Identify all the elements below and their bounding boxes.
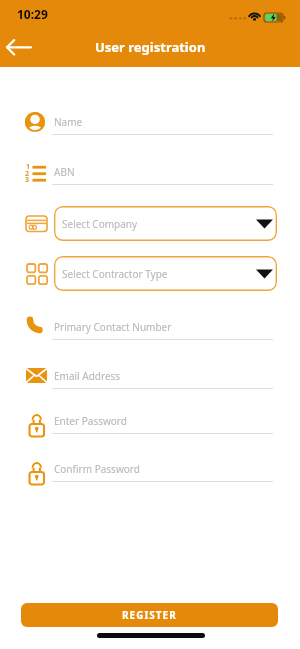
staticText: 10:29 xyxy=(17,6,48,22)
button[interactable]: Enter Password xyxy=(52,408,273,434)
staticText: 2 xyxy=(25,169,30,179)
button[interactable]: Confirm Password xyxy=(52,456,273,482)
staticText: ABN xyxy=(54,165,75,179)
staticText: Name xyxy=(54,115,83,129)
button[interactable]: Select Company xyxy=(54,206,277,241)
button[interactable] xyxy=(0,33,42,61)
staticText: User registration xyxy=(95,38,206,56)
staticText: Email Address xyxy=(54,369,121,383)
staticText: Primary Contact Number xyxy=(54,320,172,334)
button[interactable]: Email Address xyxy=(52,363,273,389)
staticText: 3 xyxy=(25,175,30,185)
staticText: Enter Password xyxy=(54,414,127,428)
staticText: Confirm Password xyxy=(54,462,140,476)
staticText: Select Contractor Type xyxy=(62,267,168,281)
staticText: REGISTER xyxy=(122,608,177,622)
button[interactable]: REGISTER xyxy=(21,603,278,627)
button[interactable]: Name xyxy=(52,109,273,135)
staticText: Select Company xyxy=(62,217,138,231)
button[interactable]: ABN xyxy=(52,159,273,185)
button[interactable]: Select Contractor Type xyxy=(54,256,277,291)
staticText: 1 xyxy=(26,162,31,172)
button[interactable]: Primary Contact Number xyxy=(52,314,273,340)
